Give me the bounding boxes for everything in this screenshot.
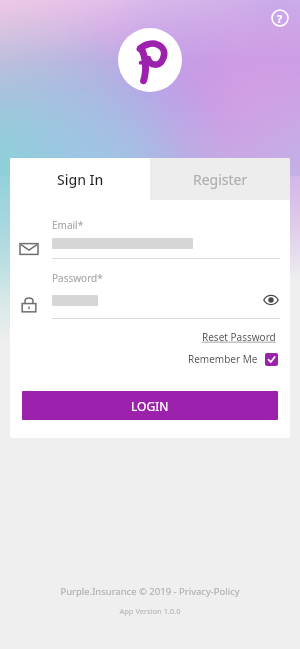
staticText: Sign In: [57, 170, 104, 189]
button[interactable]: LOGIN: [22, 391, 278, 420]
staticText: ?: [277, 11, 283, 26]
staticText: Reset Password: [202, 330, 276, 344]
button[interactable]: Sign In: [10, 158, 150, 200]
staticText: Password*: [52, 271, 103, 285]
staticText: Email*: [52, 218, 84, 232]
staticText: App Version 1.0.0: [119, 606, 181, 616]
button[interactable]: Register: [150, 158, 290, 200]
button[interactable]: Purple.Insurance © 2019 - Privacy-Policy: [60, 585, 240, 598]
staticText: Register: [193, 170, 248, 189]
staticText: Remember Me: [188, 352, 258, 366]
button[interactable]: Show password: [262, 291, 280, 309]
staticText: LOGIN: [131, 398, 169, 414]
staticText: Purple.Insurance © 2019 - Privacy-Policy: [60, 585, 240, 598]
button[interactable]: Remember Me: [188, 352, 278, 366]
button[interactable]: Reset Password: [200, 328, 278, 346]
button[interactable]: Help: [268, 6, 292, 30]
